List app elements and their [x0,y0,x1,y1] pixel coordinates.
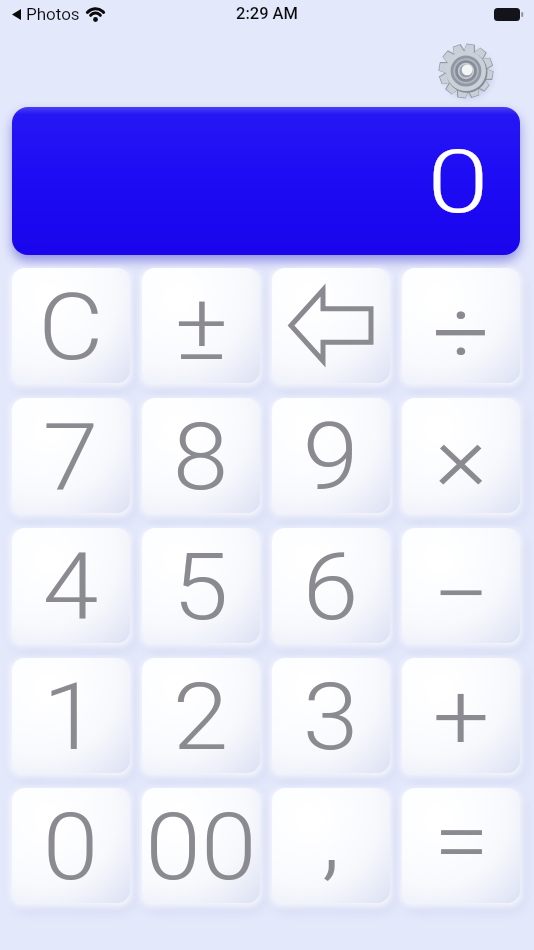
button[interactable]: 9 [272,398,390,513]
button[interactable]: C [12,268,130,383]
button[interactable]: 1 [12,658,130,773]
button[interactable]: 4 [12,528,130,643]
staticText: , [321,788,341,892]
staticText: = [434,788,489,896]
button[interactable]: = [402,788,520,903]
button[interactable]: 3 [272,658,390,773]
button[interactable]: 6 [272,528,390,643]
staticText: 5 [173,534,229,642]
button[interactable]: 00 [142,788,260,903]
staticText: × [435,404,488,512]
button[interactable]: , [272,788,390,903]
button[interactable]: + [402,658,520,773]
button[interactable]: 7 [12,398,130,513]
staticText: 2 [173,664,229,772]
staticText: 8 [173,404,229,512]
button[interactable]: ÷ [402,268,520,383]
button[interactable]: 0 [12,107,520,255]
staticText: 3 [303,664,359,772]
staticText: 2:29 AM [236,4,299,23]
button[interactable]: 5 [142,528,260,643]
staticText: 00 [145,794,258,902]
staticText: ÷ [433,280,490,383]
staticText: 7 [43,404,99,512]
button[interactable]: ± [142,268,260,383]
button[interactable]: 8 [142,398,260,513]
staticText: 0 [427,130,489,233]
staticText: ± [175,274,228,382]
staticText: 6 [303,534,359,642]
button[interactable]: × [402,398,520,513]
staticText: Photos [26,4,80,24]
button[interactable] [272,268,390,383]
staticText: 9 [303,404,359,512]
staticText: 1 [43,664,99,772]
staticText: − [433,541,490,643]
button[interactable] [438,43,494,99]
button[interactable]: 2 [142,658,260,773]
button[interactable]: − [402,528,520,643]
staticText: 4 [43,534,99,642]
staticText: C [38,274,104,382]
button[interactable]: 0 [12,788,130,903]
staticText: 0 [43,794,99,902]
staticText: + [433,664,489,772]
